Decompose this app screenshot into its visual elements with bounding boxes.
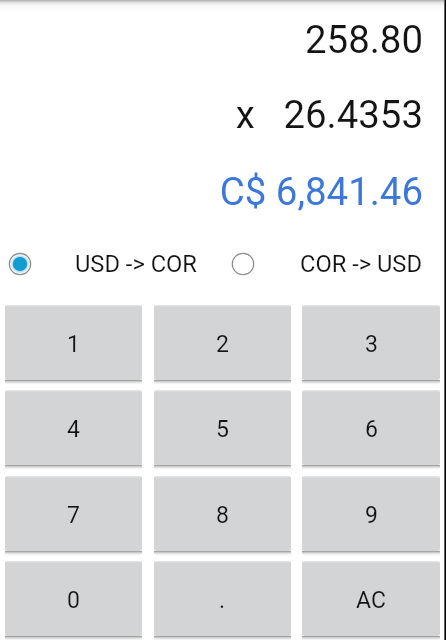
staticText: 7	[67, 502, 80, 529]
staticText: USD -> COR	[75, 250, 197, 278]
staticText: 2	[216, 331, 229, 358]
button[interactable]: COR -> USD	[231, 248, 442, 280]
button[interactable]: 0	[5, 561, 142, 636]
button[interactable]: 7	[5, 476, 142, 551]
staticText: 5	[216, 416, 229, 443]
staticText: 1	[67, 331, 80, 358]
staticText: C$ 6,841.46	[0, 169, 423, 214]
button[interactable]: 6	[302, 390, 440, 465]
staticText: AC	[356, 587, 386, 614]
staticText: 258.80	[0, 17, 423, 62]
button[interactable]: .	[154, 561, 291, 636]
staticText: .	[219, 587, 226, 614]
staticText: 8	[216, 502, 229, 529]
staticText: COR -> USD	[300, 250, 422, 278]
button[interactable]: 8	[154, 476, 291, 551]
staticText: 9	[365, 502, 378, 529]
button[interactable]: USD -> COR	[8, 248, 219, 280]
staticText: x 26.4353	[0, 92, 423, 137]
button[interactable]: 2	[154, 305, 291, 380]
button[interactable]: 9	[302, 476, 440, 551]
staticText: 0	[67, 587, 80, 614]
staticText: 3	[365, 331, 378, 358]
staticText: 6	[365, 416, 378, 443]
button[interactable]: 4	[5, 390, 142, 465]
button[interactable]: AC	[302, 561, 440, 636]
staticText: 4	[67, 416, 80, 443]
button[interactable]: 5	[154, 390, 291, 465]
button[interactable]: 1	[5, 305, 142, 380]
button[interactable]: 3	[302, 305, 440, 380]
